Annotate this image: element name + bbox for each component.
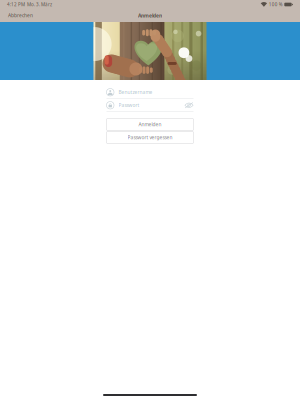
staticText: Passwort bbox=[118, 102, 139, 108]
button[interactable]: Anmelden bbox=[106, 118, 193, 130]
staticText: Anmelden bbox=[138, 12, 162, 19]
staticText: Passwort vergessen bbox=[127, 134, 172, 141]
staticText: 100 % bbox=[269, 1, 283, 8]
staticText: Abbrechen bbox=[8, 12, 33, 19]
staticText: Benutzername bbox=[118, 89, 152, 95]
staticText: Anmelden bbox=[138, 121, 161, 128]
button[interactable]: Passwort vergessen bbox=[106, 131, 193, 143]
button[interactable]: Passwort einblenden bbox=[184, 102, 193, 108]
button[interactable]: Abbrechen bbox=[0, 9, 39, 22]
staticText: 4:12 PM Mo. 3. März bbox=[7, 1, 52, 8]
